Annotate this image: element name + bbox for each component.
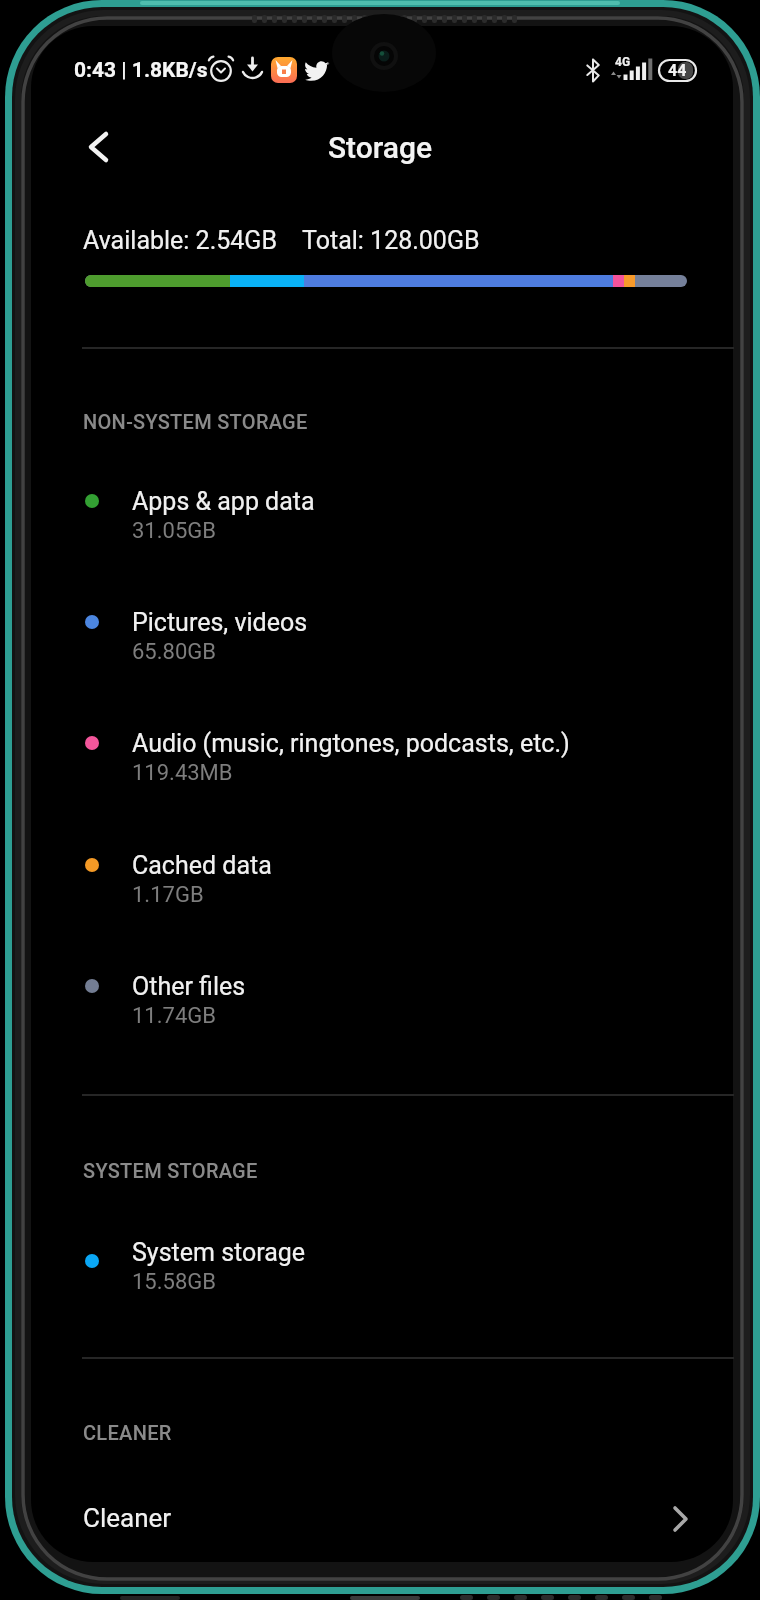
staticText: System storage <box>132 1238 306 1267</box>
staticText: Storage <box>328 130 433 165</box>
button[interactable]: Pictures, videos <box>42 572 718 684</box>
staticText: 65.80GB <box>132 639 216 665</box>
button[interactable]: Audio (music, ringtones, podcasts, etc.) <box>42 693 718 805</box>
button[interactable]: Other files <box>42 936 718 1048</box>
staticText: Cached data <box>132 851 272 880</box>
staticText: 119.43MB <box>132 760 233 786</box>
button[interactable] <box>62 112 134 182</box>
staticText: Cleaner <box>83 1503 172 1533</box>
staticText: Total: 128.00GB <box>302 226 480 255</box>
button[interactable]: Apps & app data <box>42 451 718 563</box>
staticText: NON-SYSTEM STORAGE <box>83 410 308 433</box>
staticText: 11.74GB <box>132 1003 216 1029</box>
staticText: SYSTEM STORAGE <box>83 1159 258 1182</box>
staticText: 1.17GB <box>132 882 204 908</box>
staticText: Apps & app data <box>132 487 315 516</box>
staticText: 0:43 | 1.8KB/s <box>74 58 208 83</box>
button[interactable]: System storage <box>42 1202 718 1314</box>
button[interactable]: Cached data <box>42 815 718 927</box>
staticText: 44 <box>668 61 687 80</box>
staticText: 31.05GB <box>132 518 216 544</box>
staticText: Pictures, videos <box>132 608 308 637</box>
button[interactable]: Cleaner <box>42 1480 718 1556</box>
staticText: 15.58GB <box>132 1269 216 1295</box>
staticText: CLEANER <box>83 1421 172 1444</box>
staticText: 4G <box>615 55 631 69</box>
staticText: Available: 2.54GB <box>83 226 277 255</box>
staticText: Audio (music, ringtones, podcasts, etc.) <box>132 729 570 758</box>
staticText: Other files <box>132 972 246 1001</box>
